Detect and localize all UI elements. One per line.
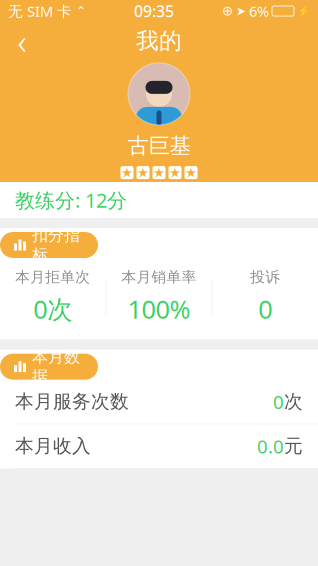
- staticText: 09:35: [134, 0, 174, 22]
- staticText: ⊕: [222, 3, 233, 18]
- staticText: 0: [273, 389, 284, 414]
- staticText: 0.0: [257, 434, 284, 459]
- staticText: 次: [284, 390, 303, 413]
- staticText: 0次: [33, 292, 72, 326]
- button[interactable]: Back: [0, 22, 44, 60]
- staticText: ‹: [17, 18, 26, 64]
- staticText: 本月数据: [32, 347, 80, 386]
- staticText: 古巨基: [127, 133, 190, 159]
- staticText: ★: [153, 165, 165, 180]
- staticText: 投诉: [250, 268, 280, 286]
- staticText: 教练分: 12分: [15, 187, 127, 213]
- staticText: 扣分指标: [32, 225, 80, 265]
- staticText: 本月销单率: [121, 268, 196, 286]
- staticText: 我的: [136, 27, 182, 55]
- staticText: ★: [169, 165, 181, 180]
- staticText: ⌃: [72, 4, 86, 18]
- staticText: ★: [121, 165, 133, 180]
- staticText: ⚡: [297, 5, 310, 17]
- staticText: 6%: [249, 1, 269, 21]
- staticText: ★: [185, 165, 197, 180]
- staticText: 0: [258, 292, 272, 326]
- staticText: ➤: [236, 4, 246, 18]
- staticText: 本月拒单次: [15, 268, 90, 286]
- staticText: ★: [137, 165, 149, 180]
- staticText: 100%: [127, 292, 190, 326]
- staticText: 本月收入: [15, 435, 91, 458]
- staticText: 本月服务次数: [15, 390, 129, 413]
- staticText: 元: [284, 435, 303, 458]
- staticText: 无 SIM 卡: [8, 1, 72, 21]
